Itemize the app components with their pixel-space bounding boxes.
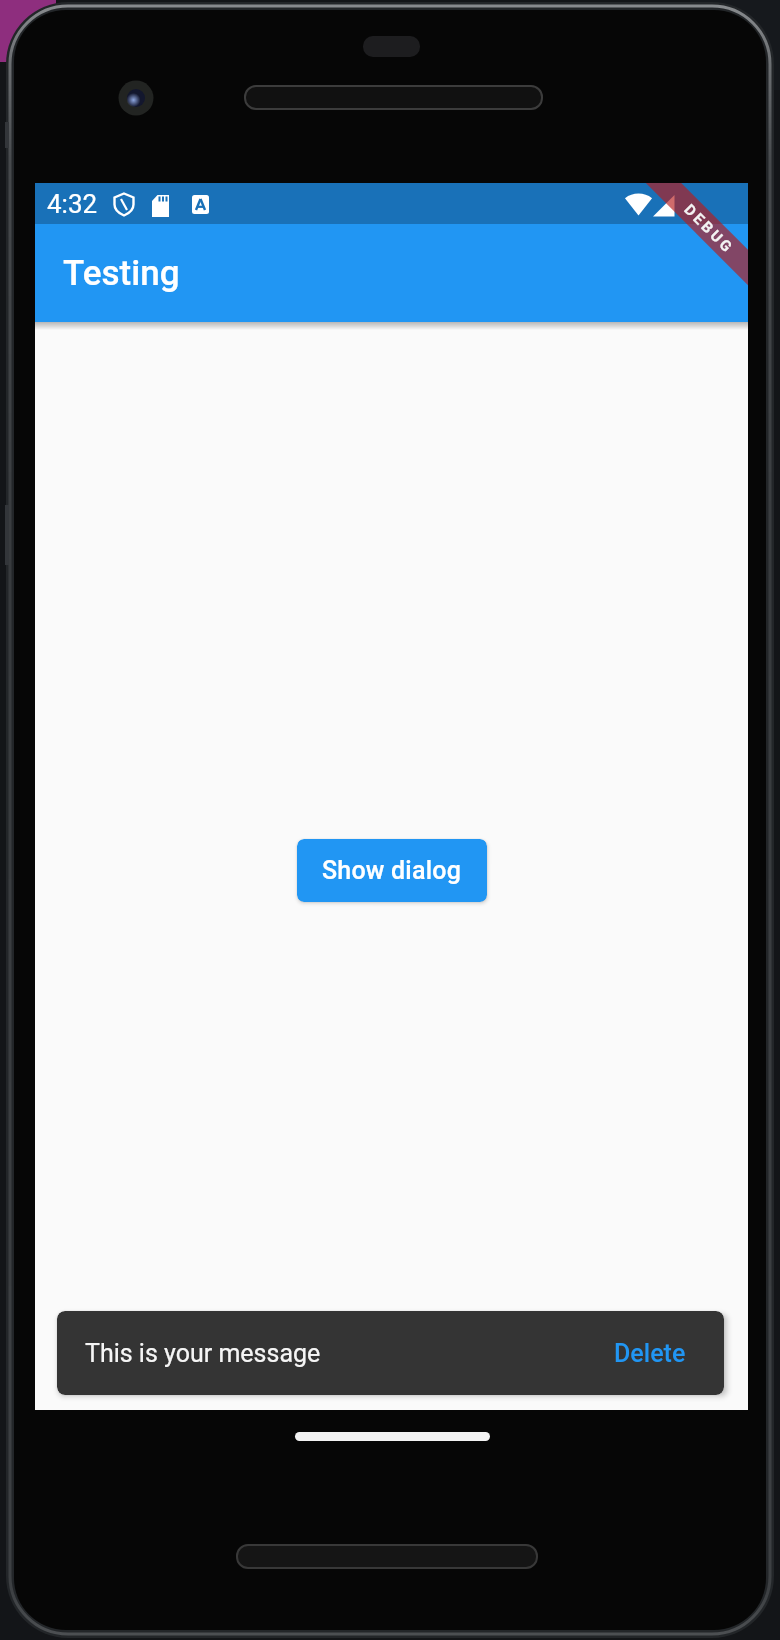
staticText: DEBUG — [680, 201, 738, 258]
staticText: Show dialog — [322, 856, 462, 885]
staticText: 4:32 — [47, 189, 98, 219]
staticText: Testing — [63, 253, 180, 294]
button[interactable]: Delete — [614, 1311, 724, 1395]
staticText: Delete — [614, 1339, 686, 1368]
staticText: This is your message — [85, 1339, 321, 1368]
button[interactable]: Show dialog — [297, 839, 487, 902]
